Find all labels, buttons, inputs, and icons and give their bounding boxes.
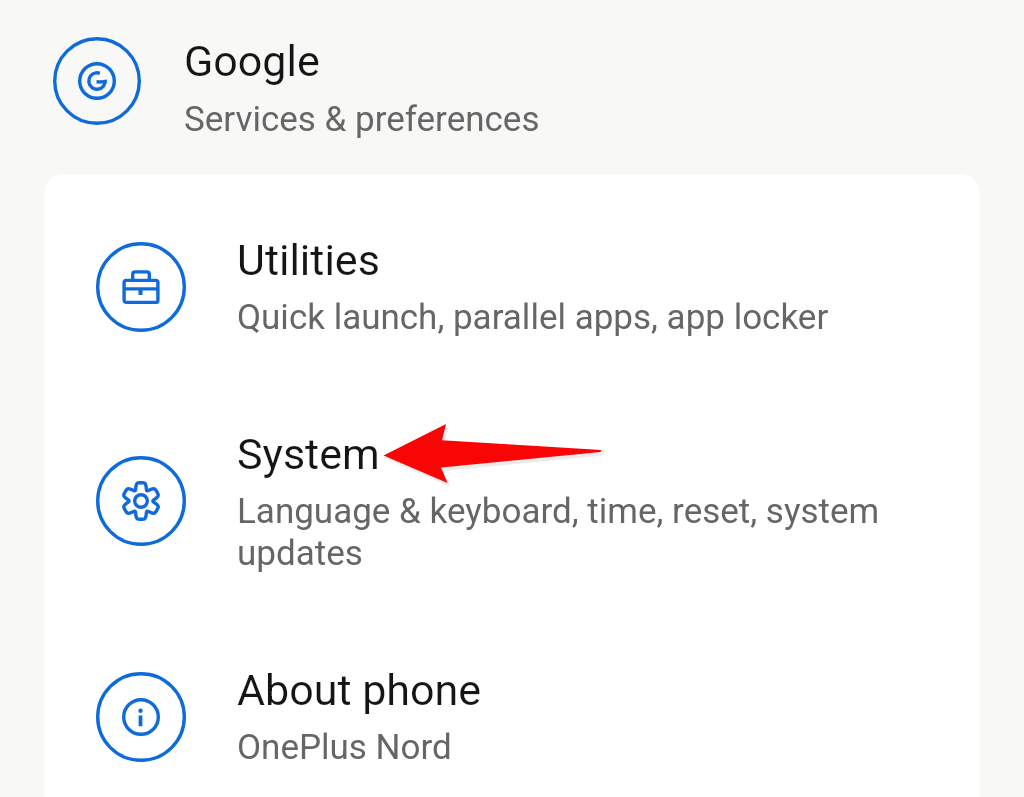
button[interactable]: System <box>44 368 980 604</box>
other: Google <box>53 37 141 125</box>
other: About phone <box>96 672 186 762</box>
staticText: System <box>237 429 380 479</box>
other: Utilities <box>96 242 186 332</box>
other: System <box>96 456 186 546</box>
staticText: Utilities <box>237 235 380 285</box>
staticText: Language & keyboard, time, reset, system… <box>237 491 897 573</box>
staticText: Quick launch, parallel apps, app locker <box>237 297 829 338</box>
staticText: OnePlus Nord <box>237 727 452 768</box>
staticText: Services & preferences <box>184 99 540 140</box>
button[interactable]: About phone <box>44 604 980 797</box>
staticText: Google <box>184 36 320 86</box>
button[interactable]: Google <box>0 0 1024 174</box>
button[interactable]: Utilities <box>44 174 980 368</box>
staticText: About phone <box>237 665 482 715</box>
